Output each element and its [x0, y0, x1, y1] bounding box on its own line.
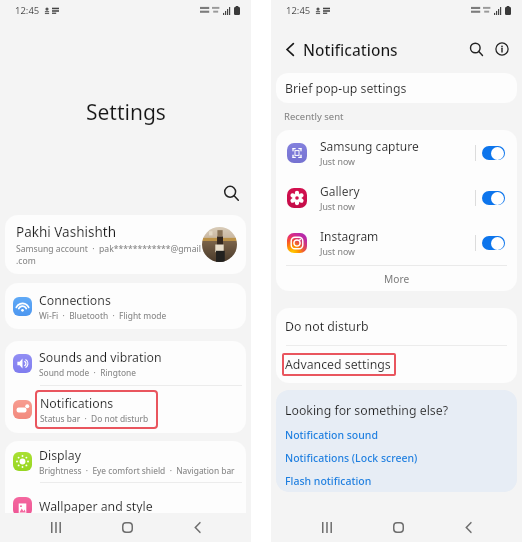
button[interactable]: Home [377, 513, 419, 542]
button[interactable]: Toggle Gallery notifications [482, 191, 505, 205]
button[interactable]: Brief pop-up settings [276, 73, 517, 103]
staticText: Samsung capture [320, 138, 419, 154]
button[interactable]: Back [278, 37, 302, 61]
button[interactable]: Home [106, 513, 148, 542]
staticText: Settings [86, 98, 166, 127]
staticText: Just now [320, 201, 356, 213]
button[interactable]: Advanced settings [276, 346, 517, 383]
staticText: 12:45 [15, 4, 40, 17]
button[interactable]: Gallery [276, 175, 517, 220]
staticText: Wi-Fi · Bluetooth · Flight mode [39, 310, 167, 321]
staticText: 12:45 [286, 4, 311, 17]
button[interactable]: Back [447, 513, 489, 542]
staticText: Advanced settings [285, 356, 391, 373]
button[interactable]: Search [463, 36, 489, 62]
staticText: Sound mode · Ringtone [39, 367, 136, 378]
button[interactable]: Recent apps [35, 513, 77, 542]
button[interactable]: Instagram [276, 220, 517, 265]
button[interactable]: Information [489, 36, 515, 62]
button[interactable]: Toggle Instagram notifications [482, 236, 505, 250]
button[interactable]: Display [5, 441, 246, 482]
button[interactable]: Connections [5, 283, 246, 329]
staticText: Instagram [320, 228, 379, 244]
staticText: Pakhi Vashishth [16, 223, 117, 241]
staticText: Samsung account · pak************@gmail … [16, 243, 201, 266]
staticText: Sounds and vibration [39, 349, 162, 366]
button[interactable]: Back [176, 513, 218, 542]
button[interactable]: Sounds and vibration [5, 341, 246, 385]
button[interactable]: Notification sound [285, 428, 378, 442]
staticText: More [384, 272, 410, 286]
button[interactable]: Wallpaper and style [5, 483, 246, 529]
staticText: Looking for something else? [285, 402, 448, 419]
staticText: Brief pop-up settings [285, 80, 407, 97]
staticText: Gallery [320, 183, 360, 199]
staticText: Wallpaper and style [39, 498, 153, 515]
button[interactable]: Notifications [5, 386, 246, 433]
button[interactable]: Search [213, 175, 249, 211]
staticText: Display [39, 447, 81, 464]
staticText: Notifications [40, 395, 114, 412]
button[interactable]: Do not disturb [276, 308, 517, 345]
staticText: Recently sent [284, 110, 344, 123]
staticText: Connections [39, 292, 111, 309]
button[interactable]: Notifications (Lock screen) [285, 451, 418, 465]
button[interactable]: Toggle Samsung capture notifications [482, 146, 505, 160]
staticText: Status bar · Do not disturb [40, 413, 149, 424]
button[interactable]: Recent apps [306, 513, 348, 542]
staticText: Just now [320, 246, 356, 258]
staticText: Brightness · Eye comfort shield · Naviga… [39, 465, 235, 476]
button[interactable]: Pakhi Vashishth [5, 215, 246, 274]
staticText: Do not disturb [285, 318, 369, 335]
button[interactable]: More [276, 266, 517, 291]
button[interactable]: Flash notification [285, 474, 372, 488]
staticText: Notifications [303, 39, 398, 60]
staticText: Just now [320, 156, 356, 168]
button[interactable]: Samsung capture [276, 130, 517, 175]
